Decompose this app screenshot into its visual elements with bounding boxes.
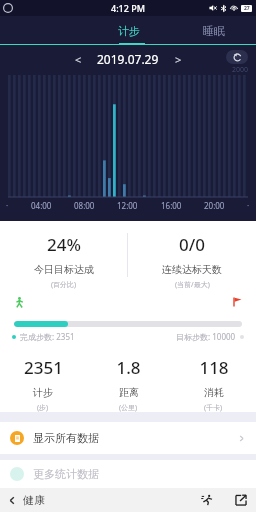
button[interactable]: Next day bbox=[169, 50, 187, 68]
staticText: 2000 bbox=[232, 65, 249, 75]
staticText: (千卡) bbox=[204, 403, 223, 412]
staticText: 27 bbox=[244, 5, 250, 12]
staticText: 16:00 bbox=[161, 200, 182, 211]
button[interactable]: 0/0 bbox=[128, 233, 256, 293]
staticText: 1.8 bbox=[116, 356, 141, 379]
staticText: > bbox=[175, 52, 182, 67]
staticText: 08:00 bbox=[74, 200, 95, 211]
staticText: (百分比) bbox=[51, 280, 77, 290]
staticText: 计步 bbox=[118, 24, 140, 38]
staticText: 显示所有数据 bbox=[33, 431, 99, 445]
staticText: 04:00 bbox=[31, 200, 52, 211]
button[interactable]: 显示所有数据 bbox=[0, 422, 256, 454]
button[interactable]: 计步 bbox=[86, 16, 171, 45]
staticText: 消耗 bbox=[204, 386, 224, 399]
staticText: 20:00 bbox=[204, 200, 225, 211]
button[interactable]: 118 bbox=[171, 356, 256, 412]
staticText: < bbox=[75, 52, 82, 67]
staticText: 118 bbox=[199, 356, 229, 379]
button[interactable]: Back bbox=[7, 493, 45, 507]
button[interactable] bbox=[0, 16, 86, 45]
staticText: 2351 bbox=[24, 356, 63, 379]
staticText: 睡眠 bbox=[203, 24, 225, 38]
staticText: (公里) bbox=[119, 403, 138, 412]
staticText: 目标步数: 10000 bbox=[176, 331, 236, 342]
staticText: · bbox=[247, 200, 250, 211]
button[interactable]: 1.8 bbox=[86, 356, 171, 412]
staticText: 12:00 bbox=[117, 200, 138, 211]
staticText: 2019.07.29 bbox=[97, 51, 159, 67]
button[interactable]: Activity bbox=[200, 493, 214, 507]
button[interactable]: 2351 bbox=[0, 356, 86, 412]
staticText: 更多统计数据 bbox=[33, 467, 99, 481]
staticText: 24% bbox=[47, 233, 81, 256]
staticText: · bbox=[6, 200, 9, 211]
staticText: 距离 bbox=[119, 386, 139, 399]
staticText: 完成步数: 2351 bbox=[20, 331, 75, 342]
button[interactable]: 24% bbox=[0, 233, 127, 293]
staticText: 健康 bbox=[23, 493, 45, 507]
button[interactable]: 睡眠 bbox=[171, 16, 256, 45]
staticText: (步) bbox=[37, 403, 49, 412]
staticText: 4:12 PM bbox=[111, 2, 145, 14]
button[interactable]: 更多统计数据 bbox=[0, 460, 256, 488]
staticText: 今日目标达成 bbox=[34, 263, 94, 276]
button[interactable]: Share bbox=[234, 493, 248, 507]
staticText: 0/0 bbox=[179, 233, 205, 256]
staticText: 连续达标天数 bbox=[162, 263, 222, 276]
button[interactable]: Refresh bbox=[226, 50, 248, 64]
button[interactable]: Previous day bbox=[69, 50, 87, 68]
staticText: 计步 bbox=[33, 386, 53, 399]
staticText: (当前/最大) bbox=[175, 280, 210, 290]
